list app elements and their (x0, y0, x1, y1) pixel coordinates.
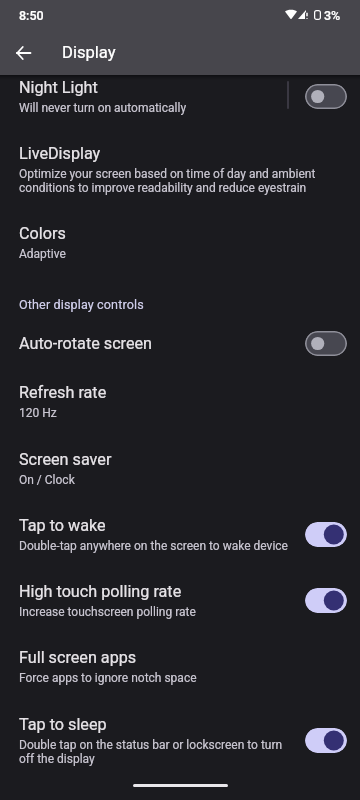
staticText: Tap to sleep (19, 715, 107, 734)
staticText: Adaptive (19, 247, 66, 261)
staticText: Auto-rotate screen (19, 334, 153, 353)
staticText: Screen saver (19, 450, 112, 469)
button[interactable]: Toggle High touch polling rate (305, 588, 347, 613)
staticText: Other display controls (19, 297, 144, 312)
staticText: High touch polling rate (19, 582, 182, 601)
staticText: Display (62, 43, 116, 62)
staticText: Refresh rate (19, 383, 107, 402)
staticText: Force apps to ignore notch space (19, 671, 197, 685)
staticText: Night Light (19, 78, 98, 97)
button[interactable]: Tap to sleep (0, 699, 360, 773)
button[interactable]: Navigate up (9, 38, 38, 67)
staticText: Tap to wake (19, 516, 106, 535)
button[interactable]: LiveDisplay (0, 138, 360, 215)
staticText: Double tap on the status bar or lockscre… (19, 738, 297, 766)
button[interactable]: High touch polling rate (0, 566, 360, 630)
button[interactable]: Refresh rate (0, 368, 360, 432)
button[interactable]: Full screen apps (0, 632, 360, 696)
staticText: 120 Hz (19, 406, 57, 420)
staticText: Full screen apps (19, 648, 137, 667)
staticText: Optimize your screen based on time of da… (19, 167, 345, 195)
button[interactable]: Colors (0, 218, 360, 280)
button[interactable]: Toggle Tap to sleep (305, 728, 347, 753)
staticText: 8:50 (19, 8, 44, 23)
button[interactable]: Toggle Tap to wake (305, 522, 347, 547)
button[interactable]: Night Light (0, 75, 360, 138)
staticText: Increase touchscreen polling rate (19, 605, 196, 619)
staticText: Will never turn on automatically (19, 101, 187, 115)
button[interactable]: Tap to wake (0, 500, 360, 564)
staticText: LiveDisplay (19, 144, 101, 163)
button[interactable]: Screen saver (0, 434, 360, 498)
staticText: Colors (19, 224, 66, 243)
staticText: Double-tap anywhere on the screen to wak… (19, 539, 288, 553)
button[interactable]: Auto-rotate screen (0, 320, 360, 366)
staticText: 3% (324, 8, 341, 23)
button[interactable]: Toggle Night Light (305, 84, 347, 109)
button[interactable]: Toggle Auto-rotate screen (305, 331, 347, 356)
staticText: On / Clock (19, 473, 75, 487)
